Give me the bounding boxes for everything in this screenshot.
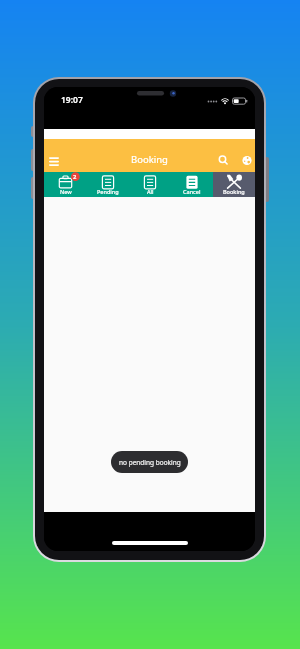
button[interactable]: 2 bbox=[44, 172, 87, 197]
staticText: New bbox=[60, 188, 72, 195]
staticText: 19:07 bbox=[61, 94, 83, 106]
button[interactable] bbox=[44, 139, 84, 172]
button[interactable]: Pending bbox=[87, 172, 129, 197]
staticText: All bbox=[147, 188, 154, 195]
button[interactable] bbox=[235, 139, 255, 172]
staticText: Pending bbox=[97, 188, 119, 195]
staticText: Booking bbox=[223, 188, 245, 195]
button[interactable]: All bbox=[129, 172, 171, 197]
staticText: 2 bbox=[73, 173, 77, 181]
staticText: Cancel bbox=[183, 188, 201, 195]
staticText: Booking bbox=[131, 153, 168, 166]
button[interactable] bbox=[215, 139, 235, 172]
button[interactable]: Booking bbox=[213, 172, 255, 197]
staticText: no pending booking bbox=[119, 458, 181, 467]
button[interactable]: Cancel bbox=[171, 172, 213, 197]
